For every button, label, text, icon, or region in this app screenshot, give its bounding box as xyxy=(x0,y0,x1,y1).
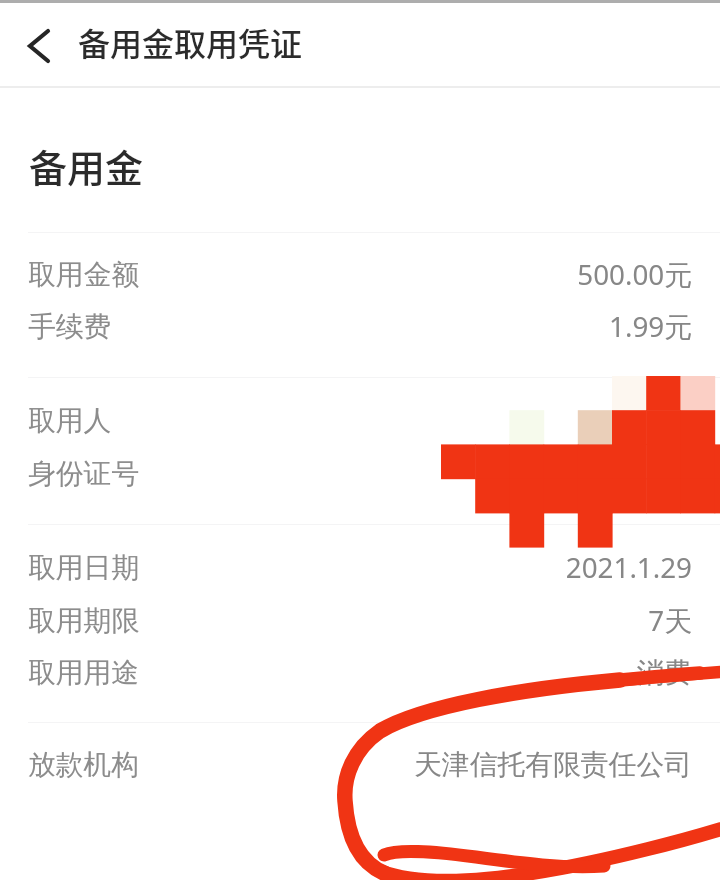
staticText: 手续费 xyxy=(28,309,112,344)
button[interactable]: 取用人 xyxy=(28,398,692,442)
button[interactable]: 放款机构 xyxy=(28,742,692,786)
staticText: 取用金额 xyxy=(28,257,140,292)
staticText: 天津信托有限责任公司 xyxy=(414,747,692,782)
staticText: 消费 xyxy=(636,655,692,690)
staticText: 取用期限 xyxy=(28,603,140,638)
staticText: 2021.1.29 xyxy=(565,548,692,586)
button[interactable]: 身份证号 xyxy=(28,451,692,495)
staticText: 500.00元 xyxy=(577,255,692,293)
staticText: 取用用途 xyxy=(28,655,140,690)
staticText: 备用金取用凭证 xyxy=(78,19,303,65)
staticText: 身份证号 xyxy=(28,456,140,491)
staticText: 放款机构 xyxy=(28,747,140,782)
button[interactable]: 取用日期 xyxy=(28,545,692,589)
staticText: 7天 xyxy=(648,601,692,639)
staticText: 取用日期 xyxy=(28,550,140,585)
staticText: 备用金 xyxy=(29,138,144,193)
button[interactable]: 取用期限 xyxy=(28,598,692,642)
staticText: 1.99元 xyxy=(609,307,692,345)
button[interactable]: 取用用途 xyxy=(28,650,692,694)
button[interactable]: Back xyxy=(0,3,78,89)
button[interactable]: 手续费 xyxy=(28,304,692,348)
button[interactable]: 取用金额 xyxy=(28,252,692,296)
staticText: 取用人 xyxy=(28,403,112,438)
